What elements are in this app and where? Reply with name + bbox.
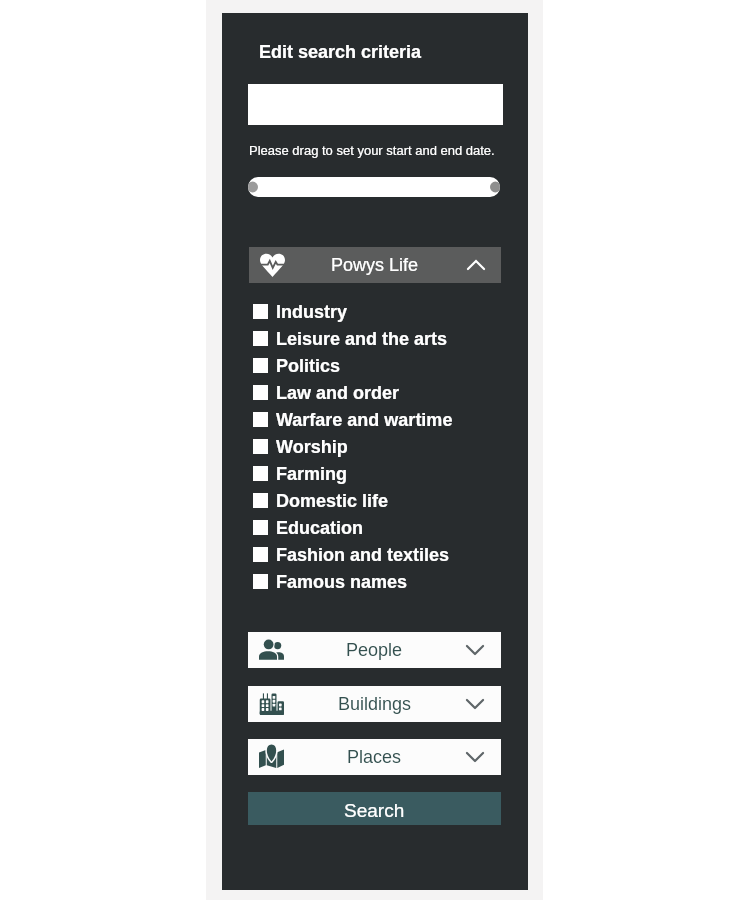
- button[interactable]: Worship: [253, 433, 348, 460]
- button[interactable]: Leisure and the arts: [253, 325, 448, 352]
- staticText: Buildings: [338, 694, 412, 714]
- staticText: Farming: [276, 464, 348, 484]
- staticText: Industry: [276, 302, 348, 322]
- button[interactable]: Powys Life: [249, 247, 501, 283]
- button[interactable]: Education: [253, 514, 364, 541]
- button[interactable]: People category: [248, 632, 501, 668]
- staticText: Leisure and the arts: [276, 329, 448, 349]
- staticText: Fashion and textiles: [276, 545, 450, 565]
- staticText: Please drag to set your start and end da…: [249, 143, 495, 158]
- button[interactable]: Buildings category: [248, 686, 501, 722]
- staticText: Worship: [276, 437, 348, 457]
- staticText: Powys Life: [331, 255, 419, 275]
- button[interactable]: Domestic life: [253, 487, 389, 514]
- staticText: Education: [276, 518, 364, 538]
- staticText: Edit search criteria: [259, 42, 422, 62]
- button[interactable]: Industry: [253, 298, 348, 325]
- staticText: Politics: [276, 356, 341, 376]
- button[interactable]: Date range slider: [248, 177, 500, 197]
- staticText: Law and order: [276, 383, 400, 403]
- button[interactable]: Warfare and wartime: [253, 406, 453, 433]
- button[interactable]: Farming: [253, 460, 348, 487]
- staticText: Domestic life: [276, 491, 389, 511]
- button[interactable]: Law and order: [253, 379, 400, 406]
- button[interactable]: Famous names: [253, 568, 408, 595]
- staticText: Search: [344, 800, 405, 821]
- staticText: Places: [347, 747, 402, 767]
- staticText: People: [346, 640, 403, 660]
- button[interactable]: Fashion and textiles: [253, 541, 450, 568]
- staticText: Famous names: [276, 572, 408, 592]
- staticText: Warfare and wartime: [276, 410, 453, 430]
- button[interactable]: Politics: [253, 352, 341, 379]
- button[interactable]: Search: [248, 792, 501, 825]
- button[interactable]: Places category: [248, 739, 501, 775]
